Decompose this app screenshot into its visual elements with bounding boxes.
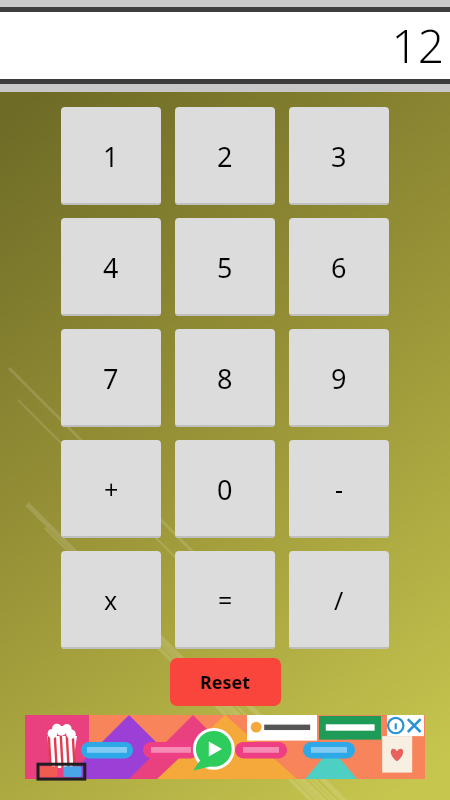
button[interactable]: 1 — [61, 107, 161, 205]
button[interactable]: + — [61, 440, 161, 538]
staticText: 1 — [103, 138, 119, 175]
button[interactable]: 12 — [0, 12, 450, 79]
staticText: - — [335, 472, 344, 506]
button[interactable]: / — [289, 551, 389, 649]
staticText: 7 — [103, 360, 119, 397]
staticText: 12 — [391, 14, 444, 77]
button[interactable]: 4 — [61, 218, 161, 316]
button[interactable]: 9 — [289, 329, 389, 427]
staticText: x — [104, 583, 118, 617]
button[interactable]: x — [61, 551, 161, 649]
staticText: 6 — [331, 249, 347, 286]
button[interactable]: Reset — [170, 658, 281, 706]
staticText: Reset — [200, 670, 251, 695]
staticText: = — [218, 583, 233, 617]
staticText: / — [334, 583, 344, 617]
staticText: 4 — [103, 249, 119, 286]
button[interactable]: 3 — [289, 107, 389, 205]
button[interactable]: Advertisement — [25, 715, 425, 779]
button[interactable]: 2 — [175, 107, 275, 205]
staticText: + — [104, 472, 119, 506]
staticText: 5 — [217, 249, 233, 286]
button[interactable]: 7 — [61, 329, 161, 427]
staticText: 8 — [217, 360, 233, 397]
staticText: 0 — [217, 471, 233, 508]
staticText: 9 — [331, 360, 347, 397]
button[interactable]: 6 — [289, 218, 389, 316]
staticText: 3 — [331, 138, 347, 175]
button[interactable]: - — [289, 440, 389, 538]
button[interactable]: = — [175, 551, 275, 649]
button[interactable]: 0 — [175, 440, 275, 538]
button[interactable]: 8 — [175, 329, 275, 427]
staticText: 2 — [217, 138, 233, 175]
button[interactable]: 5 — [175, 218, 275, 316]
